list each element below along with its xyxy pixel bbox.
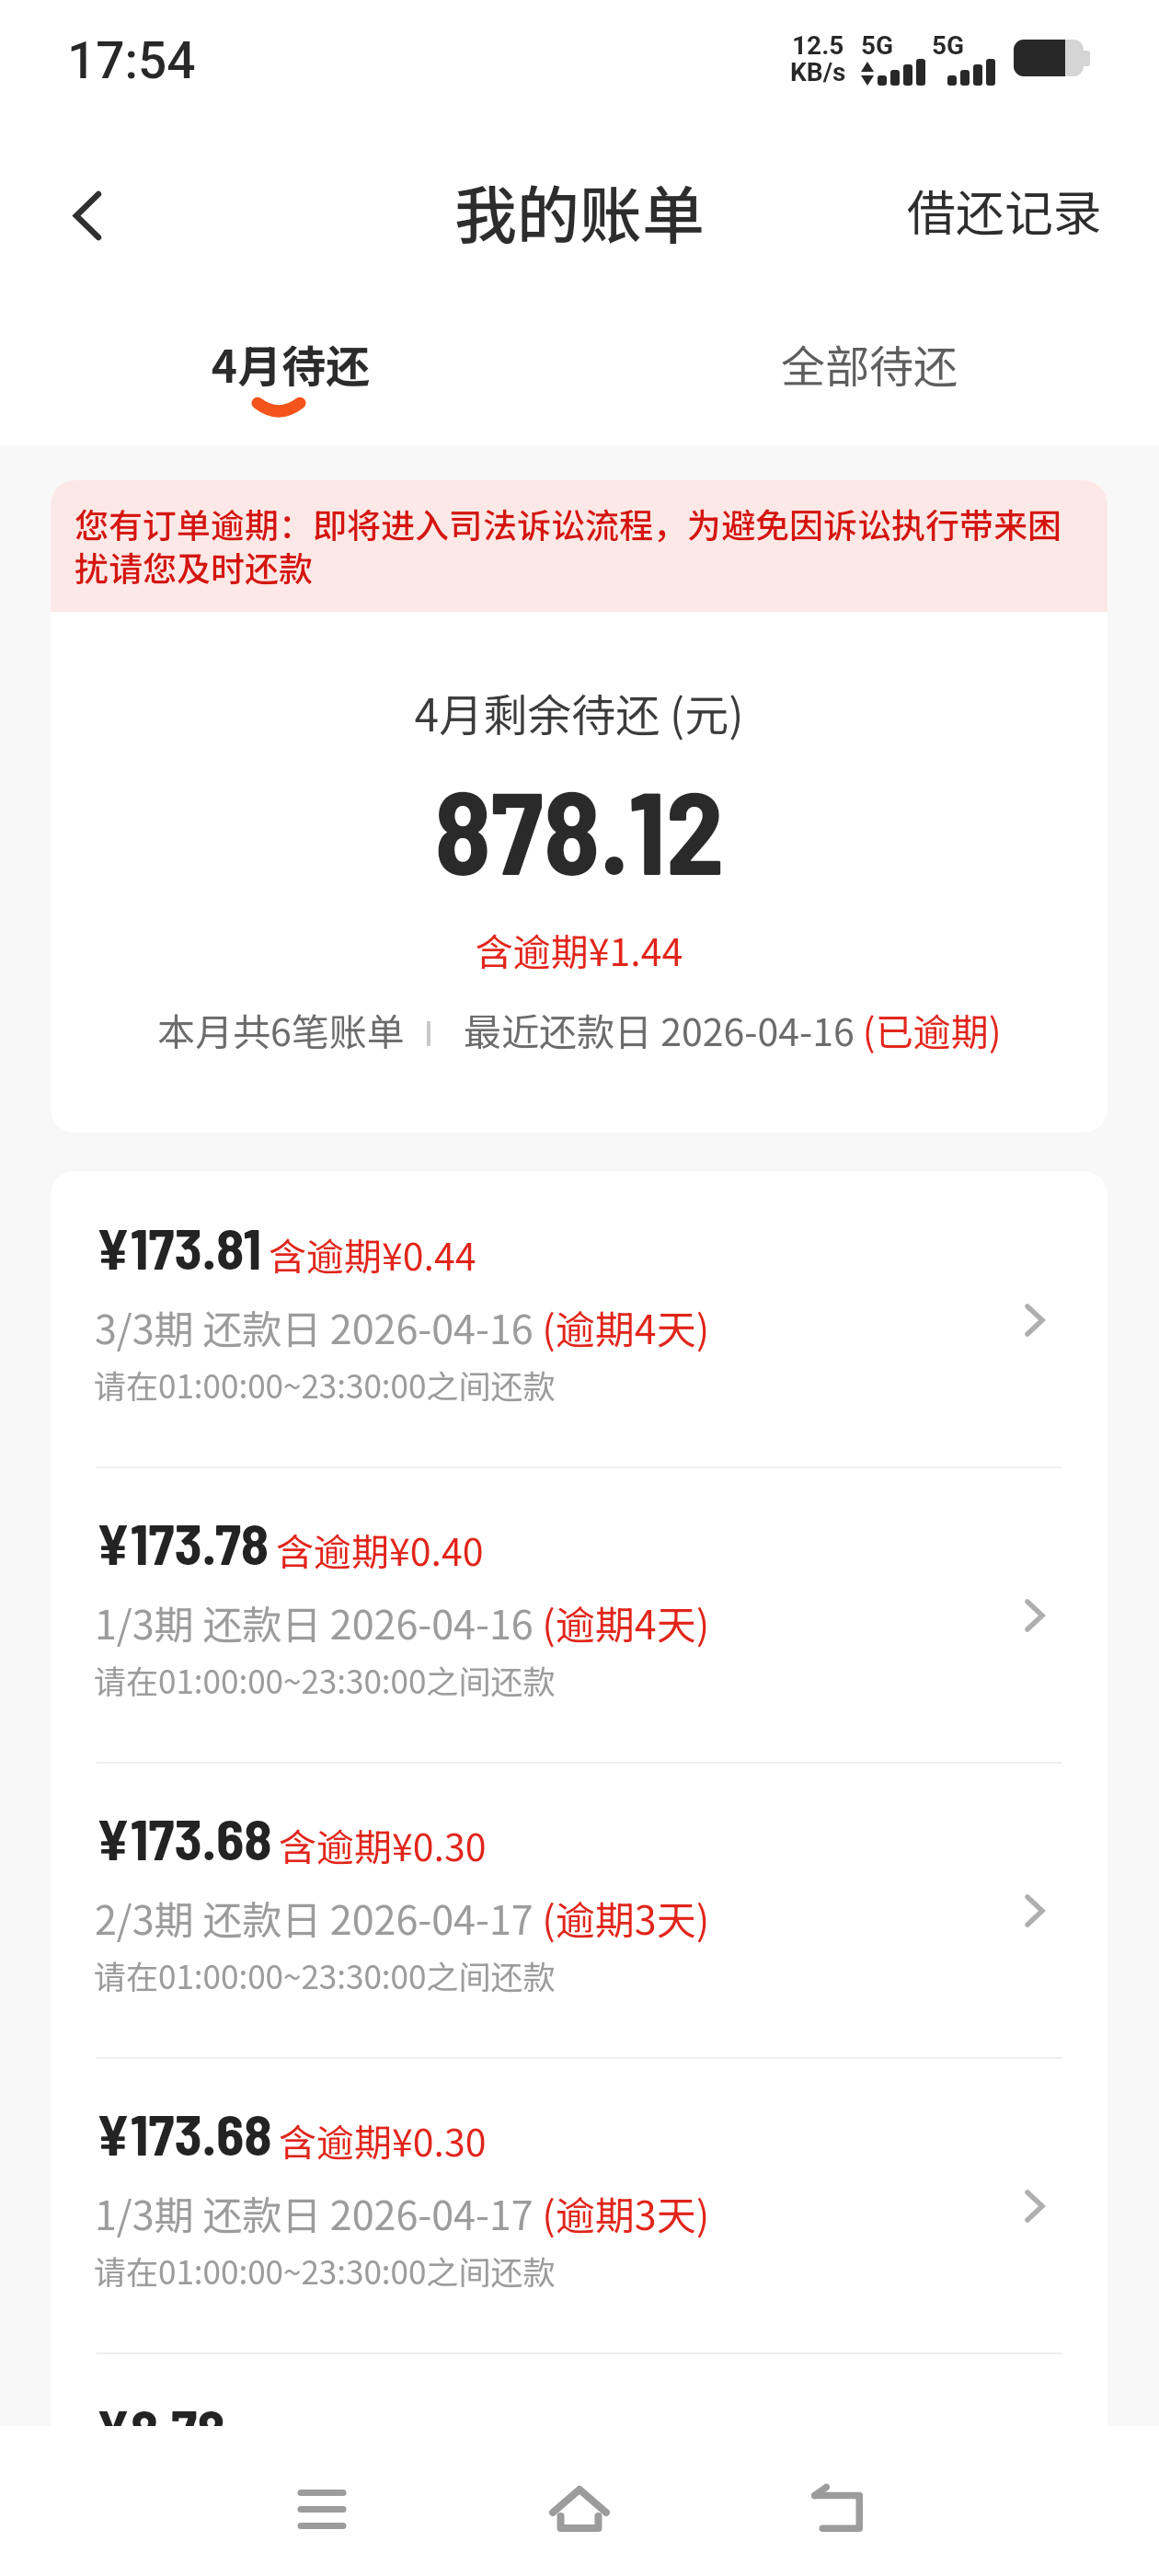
staticText: 我的账单 [454,166,706,256]
staticText: ¥173.68 [96,2099,272,2167]
button[interactable]: ¥173.68 [51,1781,1107,2076]
staticText: 借还记录 [907,175,1102,246]
button[interactable]: 4月待还 [171,305,410,424]
staticText: 1/3期 还款日 2026-04-17 (逾期3天) [95,2184,710,2241]
staticText: 含逾期¥0.40 [276,1522,484,1576]
staticText: ¥173.78 [96,1508,270,1576]
staticText: 12.5 [792,30,844,61]
button[interactable]: ¥173.78 [51,1486,1107,1781]
staticText: 5G [861,30,894,61]
staticText: 最近还款日 2026-04-16 (已逾期) [464,1002,1002,1056]
staticText: 请在01:00:00~23:30:00之间还款 [94,1951,556,1998]
staticText: 4月剩余待还 (元) [51,680,1107,744]
staticText: 含逾期¥0.30 [279,2112,487,2167]
staticText: 5G [932,30,965,61]
staticText: ¥173.68 [96,1803,272,1871]
staticText: ¥8.78 [96,2394,225,2426]
staticText: 含逾期¥1.44 [51,922,1107,976]
button[interactable]: 全部待还 [750,305,989,424]
button[interactable]: ¥8.78 [51,2372,1107,2426]
staticText: 本月共6笔账单 [157,1002,405,1056]
button[interactable]: Home [529,2458,630,2559]
staticText: ¥173.81 [96,1213,262,1281]
other: Open bill detail [1003,1583,1067,1648]
button[interactable]: 借还记录 [870,149,1139,271]
button[interactable]: Recent apps [271,2458,373,2559]
other: Open bill detail [1003,2174,1067,2238]
staticText: 1/3期 还款日 2026-04-16 (逾期4天) [95,1593,710,1650]
staticText: 请在01:00:00~23:30:00之间还款 [94,1361,556,1408]
button[interactable]: ¥173.68 [51,2076,1107,2372]
staticText: KB/s [790,57,846,87]
staticText: 4月待还 [171,331,410,396]
staticText: 含逾期¥0.44 [269,1226,476,1281]
staticText: 878.12 [51,759,1107,898]
other: Open bill detail [1003,1288,1067,1352]
staticText: 2/3期 还款日 2026-04-17 (逾期3天) [95,1889,710,1946]
staticText: 全部待还 [750,331,989,396]
other: Open bill detail [1003,1879,1067,1943]
staticText: 含逾期¥0.30 [279,1817,487,1871]
staticText: 17:54 [67,31,196,90]
button[interactable]: Back [786,2458,888,2559]
staticText: 您有订单逾期：即将进入司法诉讼流程，为避免因诉讼执行带来困 扰请您及时还款 [75,499,1061,591]
staticText: 请在01:00:00~23:30:00之间还款 [94,1656,556,1703]
button[interactable]: ¥173.81 [51,1190,1107,1486]
button[interactable]: Back [40,167,132,259]
staticText: 请在01:00:00~23:30:00之间还款 [94,2247,556,2294]
staticText: 3/3期 还款日 2026-04-16 (逾期4天) [95,1298,710,1355]
